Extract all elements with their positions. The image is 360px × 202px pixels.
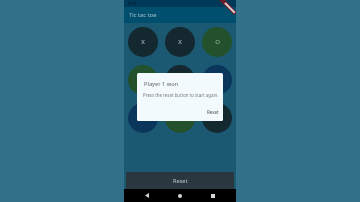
staticText: Player 1 won — [144, 80, 179, 88]
staticText: Press the reset button to start again. — [143, 92, 219, 98]
staticText: X — [178, 38, 182, 46]
button[interactable]: Home — [172, 189, 188, 202]
button[interactable] — [128, 103, 158, 133]
staticText: Tic tac toe — [129, 11, 157, 19]
button[interactable]: O — [128, 65, 158, 95]
staticText: Reset — [173, 177, 188, 185]
button[interactable]: X — [165, 27, 195, 57]
button[interactable]: O — [202, 27, 232, 57]
staticText: O — [141, 76, 146, 84]
button[interactable]: Recent apps — [205, 189, 221, 202]
button[interactable]: Reset — [205, 107, 221, 117]
button[interactable]: Reset — [126, 172, 234, 189]
staticText: O — [215, 38, 220, 46]
button[interactable]: X — [128, 27, 158, 57]
staticText: Reset — [207, 109, 219, 115]
staticText: O — [178, 114, 183, 122]
staticText: X — [215, 114, 219, 122]
button[interactable]: X — [165, 65, 195, 95]
button[interactable]: X — [202, 103, 232, 133]
button[interactable]: O — [165, 103, 195, 133]
button[interactable] — [202, 65, 232, 95]
staticText: X — [141, 38, 145, 46]
button[interactable]: Back — [139, 189, 155, 202]
